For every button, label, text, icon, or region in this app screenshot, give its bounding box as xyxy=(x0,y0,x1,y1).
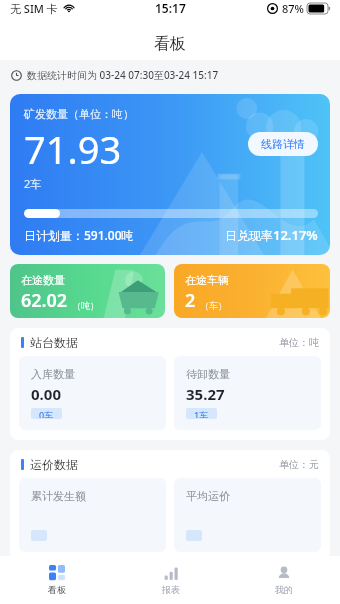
staticText: 站台数据 xyxy=(30,335,78,350)
button[interactable]: 平均运价 xyxy=(174,478,321,552)
button[interactable]: 入库数量 xyxy=(19,356,166,430)
button[interactable]: 线路详情 xyxy=(248,132,318,156)
staticText: 看板 xyxy=(48,584,66,595)
staticText: 待卸数量 xyxy=(186,367,230,381)
staticText: 数据统计时间为 03-24 07:30至03-24 15:17 xyxy=(27,68,219,82)
staticText: 71.93 xyxy=(24,123,122,175)
staticText: 35.27 xyxy=(186,384,225,404)
staticText: 无 SIM 卡 xyxy=(10,1,58,16)
staticText: 在途车辆 xyxy=(185,273,229,287)
staticText: 单位：元 xyxy=(279,458,319,471)
staticText: 0车 xyxy=(39,409,54,418)
button[interactable]: 在途车辆 xyxy=(174,264,330,318)
staticText: （车） xyxy=(200,300,227,311)
staticText: 我的 xyxy=(275,584,293,595)
button[interactable]: 我的 xyxy=(227,556,340,604)
staticText: 87% xyxy=(282,1,304,16)
staticText: 累计发生额 xyxy=(31,489,86,503)
staticText: 运价数据 xyxy=(30,457,78,472)
staticText: 12.17% xyxy=(273,226,318,244)
staticText: 62.02 xyxy=(21,288,68,313)
button[interactable]: 累计发生额 xyxy=(19,478,166,552)
staticText: 报表 xyxy=(162,584,180,595)
button[interactable]: 矿发数量（单位：吨） xyxy=(10,94,330,255)
staticText: 矿发数量（单位：吨） xyxy=(24,107,134,121)
staticText: 入库数量 xyxy=(31,367,75,381)
staticText: 线路详情 xyxy=(261,137,305,151)
staticText: 在途数量 xyxy=(21,273,65,287)
staticText: 1车 xyxy=(194,409,209,418)
staticText: 看板 xyxy=(154,34,186,54)
staticText: （吨） xyxy=(72,300,99,311)
button[interactable]: 待卸数量 xyxy=(174,356,321,430)
staticText: 日计划量：591.00吨 xyxy=(24,227,134,243)
button[interactable]: 报表 xyxy=(114,556,227,604)
staticText: 15:17 xyxy=(155,0,186,16)
staticText: 0.00 xyxy=(31,384,61,404)
staticText: 日兑现率 xyxy=(225,228,273,243)
button[interactable]: 看板 xyxy=(0,556,114,604)
staticText: 单位：吨 xyxy=(279,336,319,349)
staticText: 平均运价 xyxy=(186,489,230,503)
staticText: 2车 xyxy=(24,176,42,191)
staticText: 2 xyxy=(185,288,196,313)
button[interactable]: 在途数量 xyxy=(10,264,165,318)
